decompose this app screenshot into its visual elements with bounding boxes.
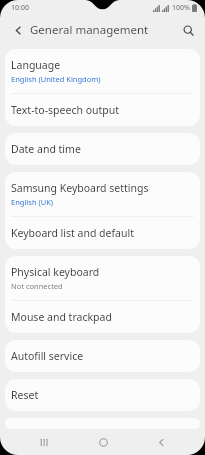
button[interactable]: Reset <box>5 379 200 411</box>
button[interactable]: Language <box>5 49 200 93</box>
staticText: General management <box>30 22 149 38</box>
button[interactable]: Keyboard list and default <box>5 217 200 249</box>
staticText: 100% <box>172 3 190 13</box>
staticText: Mouse and trackpad <box>11 310 112 324</box>
button[interactable]: Physical keyboard <box>5 256 200 300</box>
staticText: Physical keyboard <box>11 265 100 279</box>
button[interactable]: Autofill service <box>5 340 200 372</box>
staticText: Samsung Keyboard settings <box>11 181 149 195</box>
staticText: English (United Kingdom) <box>11 74 101 84</box>
staticText: Autofill service <box>11 349 84 363</box>
button[interactable]: Home <box>88 429 118 455</box>
staticText: 10:00 <box>11 3 29 13</box>
staticText: Language <box>11 58 61 72</box>
button[interactable]: Text-to-speech output <box>5 94 200 126</box>
staticText: Reset <box>11 388 39 402</box>
button[interactable]: Recent apps <box>29 429 59 455</box>
button[interactable]: Back <box>8 20 28 40</box>
button[interactable]: Back <box>146 429 176 455</box>
staticText: Keyboard list and default <box>11 226 134 240</box>
button[interactable]: Samsung Keyboard settings <box>5 172 200 216</box>
staticText: Text-to-speech output <box>11 103 120 117</box>
button[interactable]: Date and time <box>5 133 200 165</box>
button[interactable]: Search <box>177 19 199 41</box>
staticText: English (UK) <box>11 197 54 207</box>
staticText: Date and time <box>11 142 81 156</box>
button[interactable]: Mouse and trackpad <box>5 301 200 333</box>
staticText: Not connected <box>11 281 63 291</box>
